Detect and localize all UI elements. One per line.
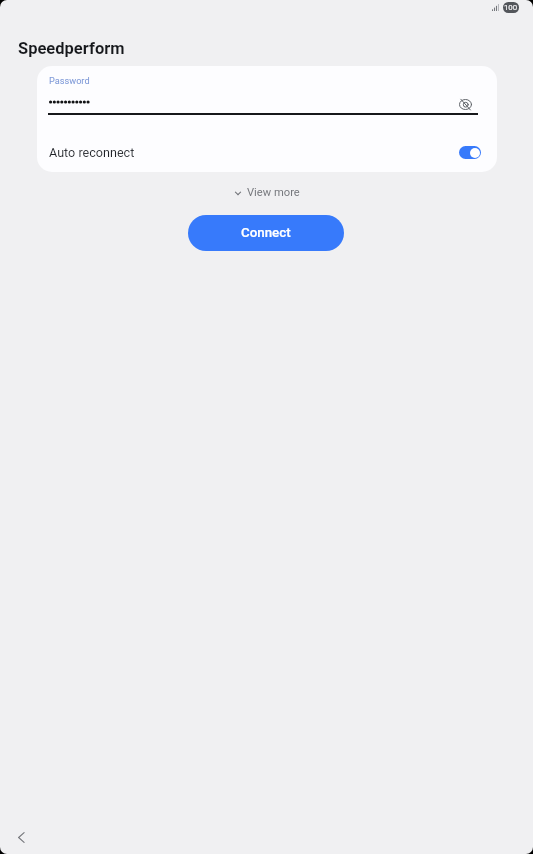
- button[interactable]: Auto reconnect toggle: [459, 146, 481, 159]
- button[interactable]: Show password: [450, 89, 480, 119]
- button[interactable]: Connect: [188, 215, 344, 251]
- button[interactable]: Auto reconnect: [37, 126, 496, 172]
- staticText: View more: [247, 186, 300, 199]
- button[interactable]: Back: [6, 822, 36, 852]
- staticText: Password: [49, 75, 90, 86]
- staticText: Speedperform: [18, 39, 125, 58]
- button[interactable]: View more: [229, 183, 306, 202]
- staticText: Connect: [241, 225, 291, 241]
- staticText: Auto reconnect: [49, 145, 135, 160]
- staticText: 100: [504, 3, 518, 12]
